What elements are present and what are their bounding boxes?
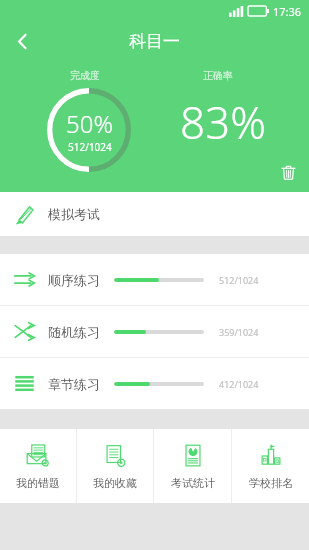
button[interactable]: 随机练习 (0, 306, 309, 357)
button[interactable]: 我的错题 (0, 429, 76, 503)
button[interactable]: Back (5, 24, 39, 58)
staticText: 我的收藏 (93, 476, 137, 490)
staticText: 随机练习 (48, 324, 114, 340)
button[interactable]: 顺序练习 (0, 254, 309, 305)
button[interactable]: 考试统计 (154, 429, 231, 503)
staticText: 359/1024 (219, 326, 259, 338)
staticText: 正确率 (203, 69, 233, 82)
staticText: 顺序练习 (48, 272, 114, 288)
staticText: 17:36 (273, 4, 302, 19)
button[interactable]: 章节练习 (0, 358, 309, 409)
staticText: 模拟考试 (48, 206, 100, 222)
staticText: 我的错题 (16, 476, 60, 490)
button[interactable]: 模拟考试 (0, 192, 309, 236)
staticText: 512/1024 (219, 274, 259, 286)
staticText: 科目一 (129, 31, 180, 52)
button[interactable]: Delete (275, 159, 301, 185)
staticText: 512/1024 (68, 140, 112, 154)
staticText: 考试统计 (171, 476, 215, 490)
staticText: 完成度 (70, 69, 100, 82)
staticText: 412/1024 (219, 378, 259, 390)
staticText: 83% (180, 92, 266, 152)
staticText: 学校排名 (249, 476, 293, 490)
button[interactable]: 学校排名 (232, 429, 309, 503)
staticText: 50% (66, 107, 113, 140)
staticText: 章节练习 (48, 376, 114, 392)
button[interactable]: 我的收藏 (77, 429, 153, 503)
